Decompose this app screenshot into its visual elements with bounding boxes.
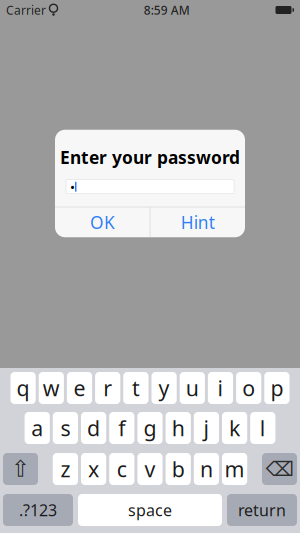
button[interactable]: c [109, 453, 134, 485]
button[interactable]: m [222, 453, 247, 485]
button[interactable]: Shift [3, 453, 38, 485]
staticText: c [117, 455, 127, 483]
staticText: f [118, 414, 125, 442]
button[interactable]: OK [55, 207, 150, 237]
button[interactable]: w [39, 372, 64, 404]
button[interactable]: e [67, 372, 92, 404]
button[interactable]: p [264, 372, 289, 404]
staticText: OK [90, 211, 115, 234]
staticText: ⇧ [11, 456, 30, 482]
staticText: k [229, 414, 240, 442]
staticText: j [203, 414, 209, 442]
button[interactable]: space [78, 494, 222, 526]
staticText: l [260, 414, 266, 442]
button[interactable]: j [194, 412, 219, 444]
staticText: q [17, 374, 30, 402]
button[interactable]: y [151, 372, 177, 404]
staticText: v [144, 455, 155, 483]
button[interactable]: z [53, 453, 78, 485]
button[interactable]: g [137, 412, 163, 444]
staticText: n [200, 455, 213, 483]
staticText: z [60, 455, 70, 483]
staticText: return [238, 499, 286, 521]
button[interactable]: b [166, 453, 191, 485]
button[interactable]: n [194, 453, 219, 485]
staticText: y [159, 374, 170, 402]
staticText: e [73, 374, 85, 402]
button[interactable]: s [53, 412, 78, 444]
staticText: • [70, 178, 75, 196]
button[interactable]: k [222, 412, 247, 444]
button[interactable]: u [180, 372, 205, 404]
staticText: b [172, 455, 185, 483]
staticText: u [186, 374, 199, 402]
staticText: ⌫ [265, 458, 293, 480]
staticText: h [172, 414, 185, 442]
staticText: .?123 [19, 499, 57, 521]
staticText: x [88, 455, 99, 483]
staticText: Carrier [6, 2, 46, 18]
staticText: 8:59 AM [144, 2, 190, 18]
staticText: space [128, 499, 172, 521]
button[interactable]: h [166, 412, 191, 444]
staticText: r [103, 374, 112, 402]
staticText: d [87, 414, 100, 442]
button[interactable]: l [250, 412, 275, 444]
staticText: p [270, 374, 283, 402]
button[interactable]: v [137, 453, 163, 485]
staticText: a [31, 414, 43, 442]
staticText: s [60, 414, 70, 442]
button[interactable]: x [81, 453, 106, 485]
staticText: o [242, 374, 255, 402]
button[interactable]: i [208, 372, 233, 404]
button[interactable]: .?123 [3, 494, 73, 526]
button[interactable]: f [109, 412, 134, 444]
staticText: m [225, 455, 245, 483]
button[interactable]: d [81, 412, 106, 444]
button[interactable]: o [236, 372, 261, 404]
button[interactable]: Hint [150, 207, 245, 237]
button[interactable]: return [227, 494, 297, 526]
button[interactable]: Delete [262, 453, 297, 485]
staticText: t [132, 374, 140, 402]
staticText: Enter your password [60, 146, 240, 169]
button[interactable]: t [123, 372, 148, 404]
button[interactable]: a [25, 412, 50, 444]
button[interactable]: q [10, 372, 36, 404]
button[interactable]: r [95, 372, 120, 404]
staticText: Hint [181, 211, 215, 234]
staticText: w [43, 374, 60, 402]
staticText: i [217, 374, 223, 402]
staticText: g [143, 414, 156, 442]
